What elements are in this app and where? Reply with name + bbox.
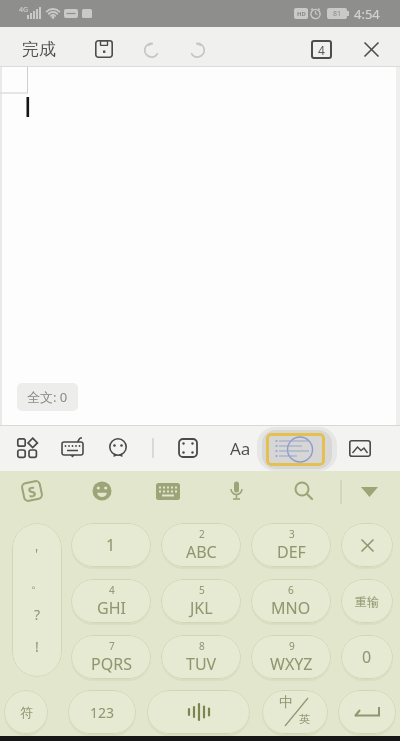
staticText: 2 <box>199 527 205 541</box>
button[interactable]: 9 <box>251 635 331 679</box>
button[interactable]: 1 <box>71 523 151 567</box>
staticText: 6 <box>288 583 294 597</box>
staticText: 。 <box>31 576 43 591</box>
button[interactable] <box>92 481 112 501</box>
button[interactable]: 6 <box>251 579 331 623</box>
staticText: 重输 <box>355 594 379 609</box>
button[interactable] <box>341 523 393 567</box>
button[interactable] <box>294 481 315 502</box>
staticText: 4 <box>109 583 115 597</box>
button[interactable] <box>188 41 207 58</box>
button[interactable]: 3 <box>251 523 331 567</box>
button[interactable] <box>338 690 396 734</box>
button[interactable]: 重输 <box>341 579 393 623</box>
staticText: PQRS <box>91 653 132 675</box>
staticText: 7 <box>109 639 115 653</box>
staticText: 123 <box>90 703 115 722</box>
staticText: 1 <box>106 534 116 556</box>
staticText: TUV <box>186 653 217 675</box>
button[interactable] <box>229 481 244 502</box>
staticText: S <box>26 481 38 502</box>
staticText: 9 <box>289 639 295 653</box>
staticText: 全文: 0 <box>27 388 68 406</box>
staticText: DEF <box>277 541 306 563</box>
button[interactable] <box>364 42 379 57</box>
button[interactable]: 完成 <box>10 34 68 64</box>
button[interactable] <box>17 438 39 459</box>
button[interactable] <box>178 438 198 458</box>
button[interactable]: 7 <box>71 635 151 679</box>
button[interactable]: 符 <box>4 690 48 734</box>
button[interactable]: 0 <box>341 635 393 679</box>
button[interactable] <box>349 440 371 457</box>
staticText: HD <box>297 10 306 18</box>
button[interactable] <box>156 483 180 500</box>
button[interactable] <box>61 437 84 459</box>
button[interactable]: 4 <box>311 40 332 59</box>
button[interactable]: 123 <box>68 690 136 734</box>
staticText: WXYZ <box>270 653 313 675</box>
staticText: 4G <box>19 5 29 15</box>
staticText: GHI <box>97 597 126 619</box>
staticText: ? <box>34 605 41 624</box>
staticText: 0 <box>362 646 372 668</box>
staticText: 符 <box>20 704 33 720</box>
button[interactable] <box>266 433 325 466</box>
staticText: 中 <box>279 694 293 712</box>
staticText: ' <box>35 544 39 563</box>
button[interactable] <box>95 40 113 58</box>
button[interactable] <box>107 438 129 459</box>
staticText: 3 <box>289 527 295 541</box>
staticText: ABC <box>186 541 217 563</box>
staticText: 4 <box>318 42 325 58</box>
button[interactable]: Aa <box>222 434 258 462</box>
button[interactable]: ' <box>12 523 62 677</box>
button[interactable]: 8 <box>161 635 241 679</box>
staticText: 4:54 <box>354 5 380 23</box>
button[interactable]: 中 <box>262 690 328 734</box>
button[interactable] <box>147 690 250 734</box>
button[interactable]: 4 <box>71 579 151 623</box>
staticText: 8 <box>199 639 205 653</box>
staticText: 完成 <box>22 39 56 60</box>
button[interactable]: 2 <box>161 523 241 567</box>
staticText: 81 <box>333 9 342 19</box>
staticText: Aa <box>230 437 251 460</box>
staticText: MNO <box>271 597 311 619</box>
button[interactable]: S <box>20 479 44 503</box>
staticText: 5 <box>199 583 205 597</box>
staticText: ! <box>35 637 39 656</box>
staticText: 英 <box>299 712 310 726</box>
button[interactable]: 5 <box>161 579 241 623</box>
button[interactable] <box>142 41 161 58</box>
staticText: JKL <box>190 597 213 619</box>
button[interactable] <box>361 487 378 497</box>
